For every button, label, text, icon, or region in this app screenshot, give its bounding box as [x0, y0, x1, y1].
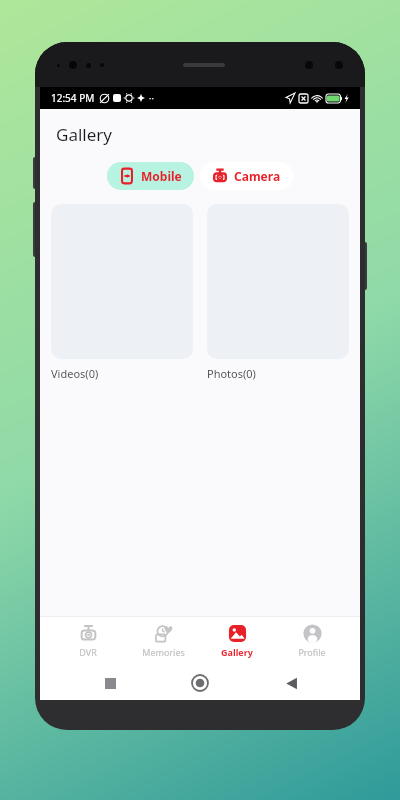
button[interactable]: Mobile — [107, 162, 194, 190]
button[interactable]: Gallery — [202, 616, 272, 666]
staticText: Videos(0) — [51, 366, 99, 381]
staticText: Mobile — [141, 168, 182, 184]
button[interactable]: Profile — [277, 616, 347, 666]
button[interactable]: Memories — [128, 616, 198, 666]
button[interactable]: DVR — [53, 616, 123, 666]
staticText: Memories — [142, 646, 185, 658]
staticText: Photos(0) — [207, 366, 256, 381]
staticText: DVR — [79, 646, 97, 658]
staticText: Gallery — [56, 123, 112, 146]
staticText: Camera — [234, 168, 281, 184]
button[interactable]: Videos(0) — [51, 204, 193, 381]
button[interactable]: Photos(0) — [207, 204, 349, 381]
staticText: ·· — [149, 92, 154, 104]
button[interactable]: Recent apps — [89, 666, 131, 700]
staticText: 12:54 PM — [51, 91, 95, 105]
button[interactable]: Camera — [200, 162, 293, 190]
staticText: Profile — [298, 646, 326, 658]
staticText: Gallery — [221, 646, 253, 658]
button[interactable]: Home — [179, 666, 221, 700]
button[interactable]: Back — [270, 666, 312, 700]
